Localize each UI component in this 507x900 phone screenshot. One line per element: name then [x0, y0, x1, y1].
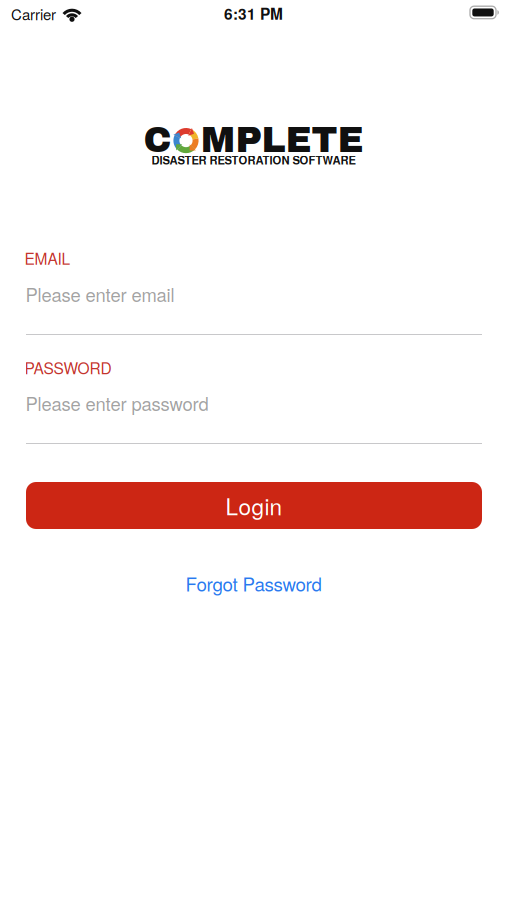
staticText: Carrier	[11, 3, 56, 24]
staticText: DISASTER RESTORATION SOFTWARE	[151, 152, 355, 168]
button[interactable]: Login	[26, 482, 482, 529]
staticText: 6:31 PM	[224, 2, 283, 25]
staticText: C	[143, 120, 171, 160]
staticText: Login	[225, 489, 282, 522]
staticText: EMAIL	[24, 247, 70, 269]
staticText: PASSWORD	[24, 356, 111, 379]
staticText: Please enter password	[25, 390, 208, 416]
staticText: MPLETE	[200, 120, 363, 160]
staticText: Forgot Password	[185, 570, 321, 597]
staticText: Please enter email	[25, 281, 174, 307]
button[interactable]: Forgot Password	[185, 570, 321, 597]
